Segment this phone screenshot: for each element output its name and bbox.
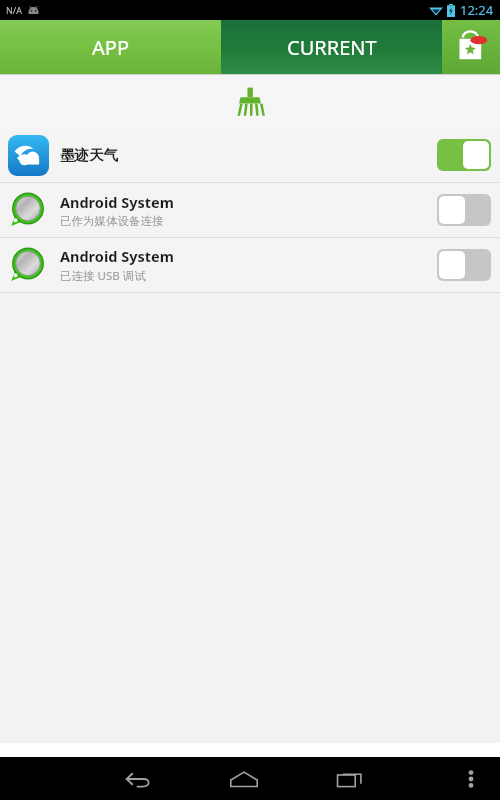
staticText: 已连接 USB 调试 bbox=[60, 268, 146, 284]
button[interactable]: 墨迹天气 bbox=[0, 128, 500, 182]
button[interactable]: Recent apps bbox=[322, 757, 378, 800]
button[interactable]: Home bbox=[216, 757, 272, 800]
button[interactable]: Disabled toggle bbox=[437, 249, 491, 281]
staticText: 墨迹天气 bbox=[60, 146, 118, 164]
button[interactable]: CURRENT bbox=[221, 20, 442, 74]
staticText: APP bbox=[92, 34, 129, 61]
staticText: 已作为媒体设备连接 bbox=[60, 214, 164, 228]
button[interactable]: Disabled toggle bbox=[437, 194, 491, 226]
button[interactable]: Android System bbox=[0, 238, 500, 292]
button[interactable]: Clean bbox=[0, 75, 500, 128]
staticText: Android System bbox=[60, 246, 174, 266]
staticText: N/A bbox=[6, 4, 22, 16]
button[interactable]: APP bbox=[0, 20, 221, 74]
button[interactable]: Back bbox=[110, 757, 166, 800]
button[interactable]: More options bbox=[448, 757, 494, 800]
button[interactable]: Store, new items bbox=[442, 20, 500, 74]
staticText: Android System bbox=[60, 192, 174, 212]
button[interactable]: Enabled toggle bbox=[437, 139, 491, 171]
button[interactable]: Android System bbox=[0, 183, 500, 237]
staticText: 12:24 bbox=[460, 1, 494, 19]
staticText: CURRENT bbox=[287, 34, 377, 61]
